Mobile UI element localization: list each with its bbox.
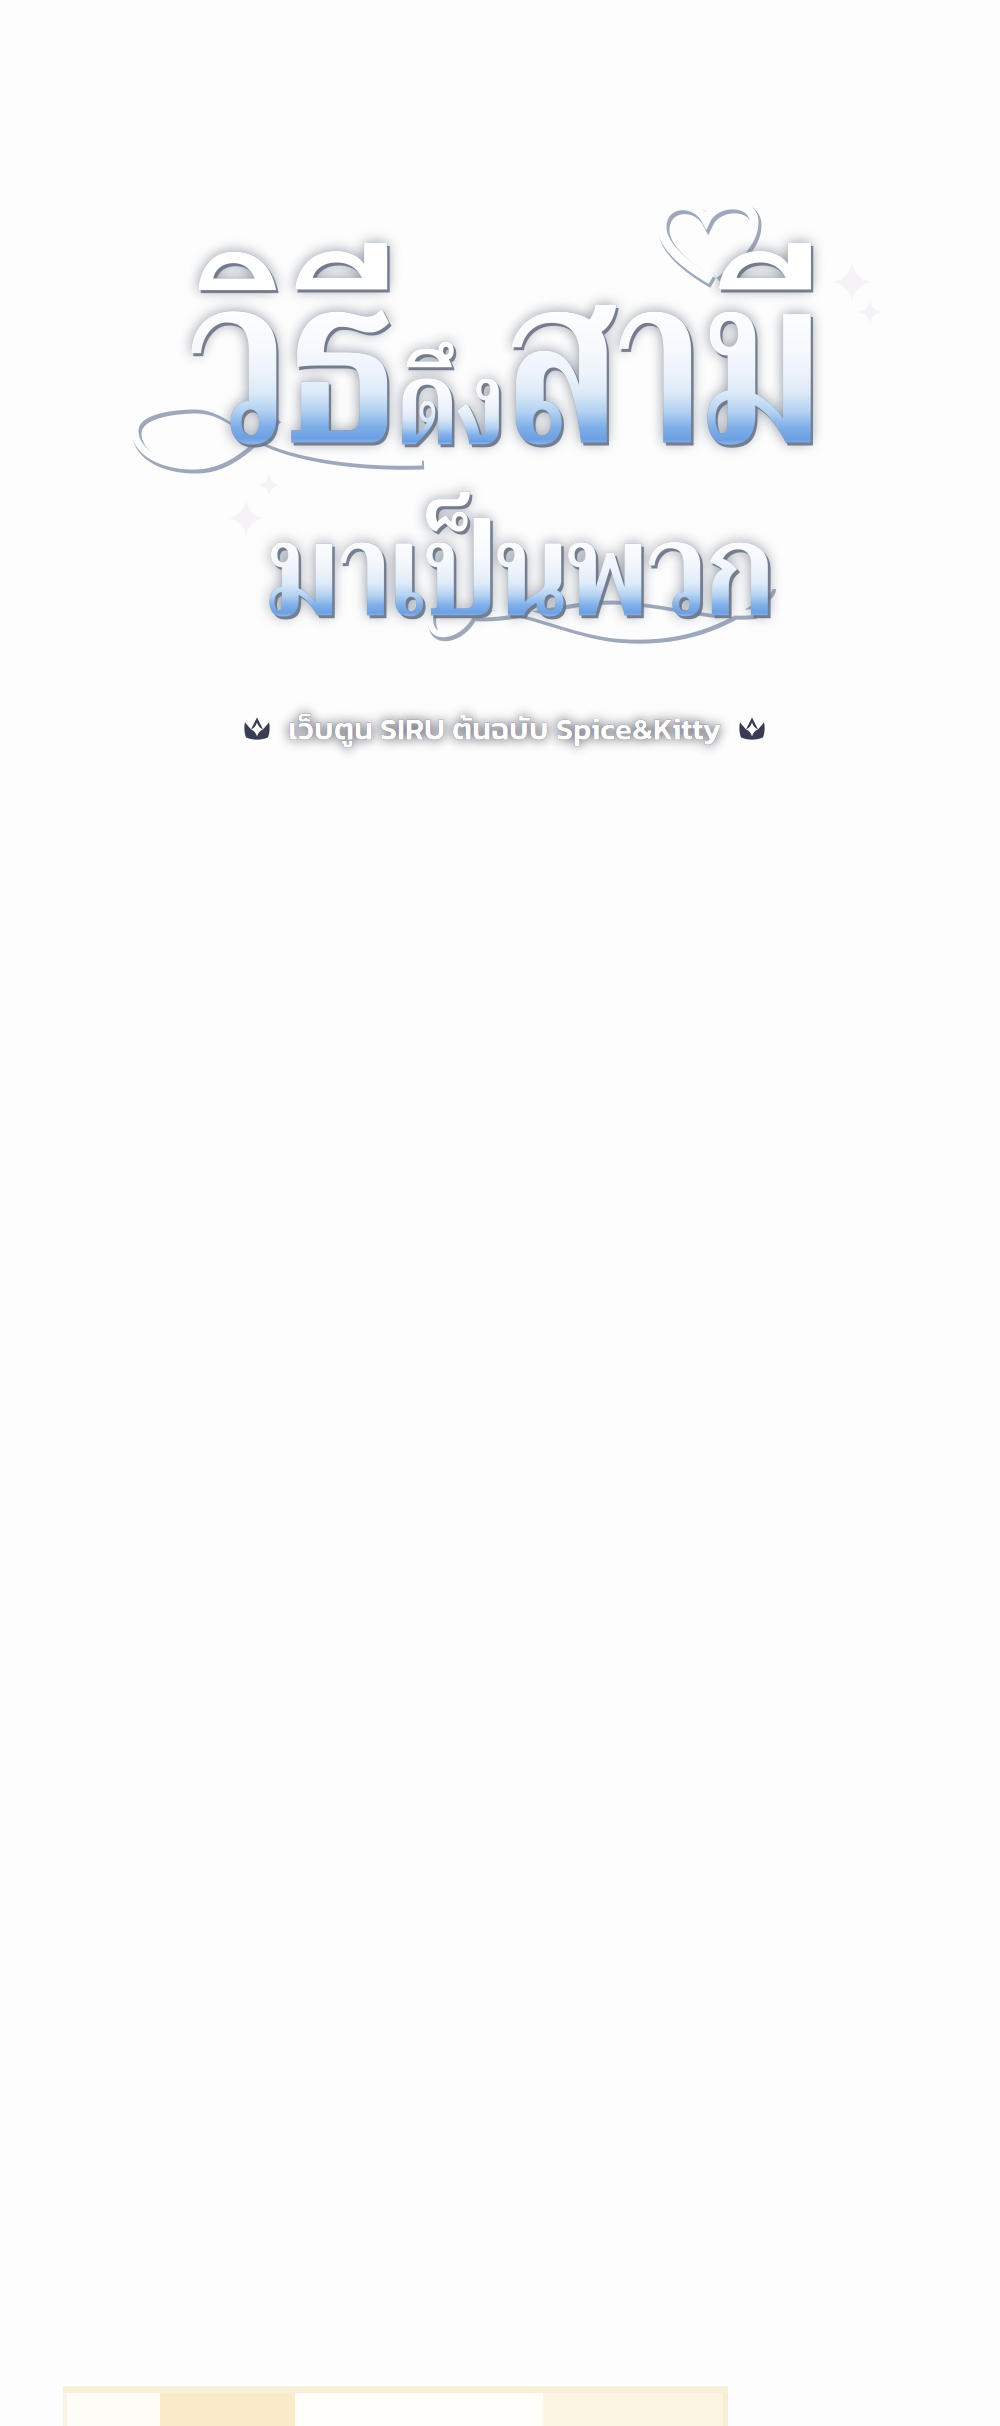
staticText: สามี [590,164,993,566]
staticText: เว็บตูน SIRU ต้นฉบับ Spice&Kitty [288,706,721,752]
staticText: เว็บตูน SIRU ต้นฉบับ Spice&Kitty [288,706,721,752]
staticText: ดึง [454,305,590,506]
staticText: มาเป็นพวก [266,460,860,684]
staticText: วิธี [189,164,454,566]
